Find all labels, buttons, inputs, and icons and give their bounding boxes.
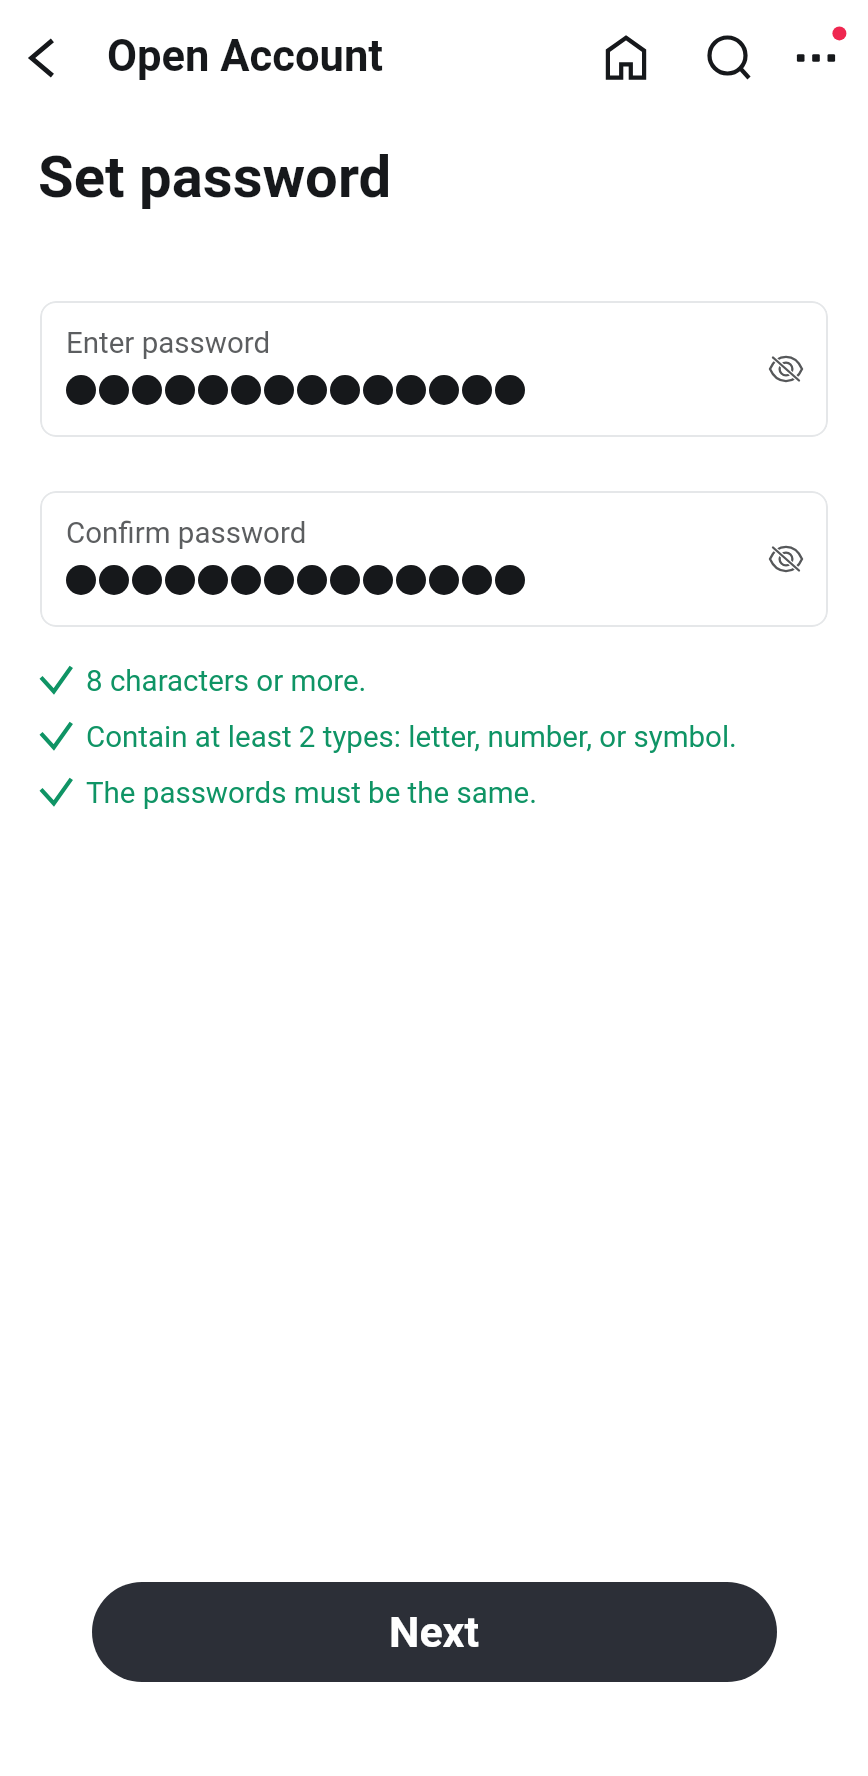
staticText: Enter password bbox=[66, 326, 271, 361]
button[interactable]: Confirm password bbox=[40, 491, 828, 627]
button[interactable]: Enter password bbox=[40, 301, 828, 437]
staticText: 8 characters or more. bbox=[86, 664, 367, 699]
button[interactable]: More options bbox=[780, 21, 852, 93]
staticText: Confirm password bbox=[66, 516, 307, 551]
staticText: The passwords must be the same. bbox=[86, 776, 538, 811]
staticText: Contain at least 2 types: letter, number… bbox=[86, 720, 737, 755]
button[interactable]: Show password bbox=[750, 333, 822, 405]
staticText: Next bbox=[389, 1607, 480, 1657]
button[interactable]: Next bbox=[92, 1582, 777, 1682]
staticText: Set password bbox=[38, 143, 392, 211]
button[interactable]: Show password bbox=[750, 523, 822, 595]
staticText: Open Account bbox=[107, 31, 383, 82]
button[interactable]: Back bbox=[6, 22, 78, 94]
button[interactable]: Search bbox=[692, 21, 764, 93]
button[interactable]: Home bbox=[590, 21, 662, 93]
